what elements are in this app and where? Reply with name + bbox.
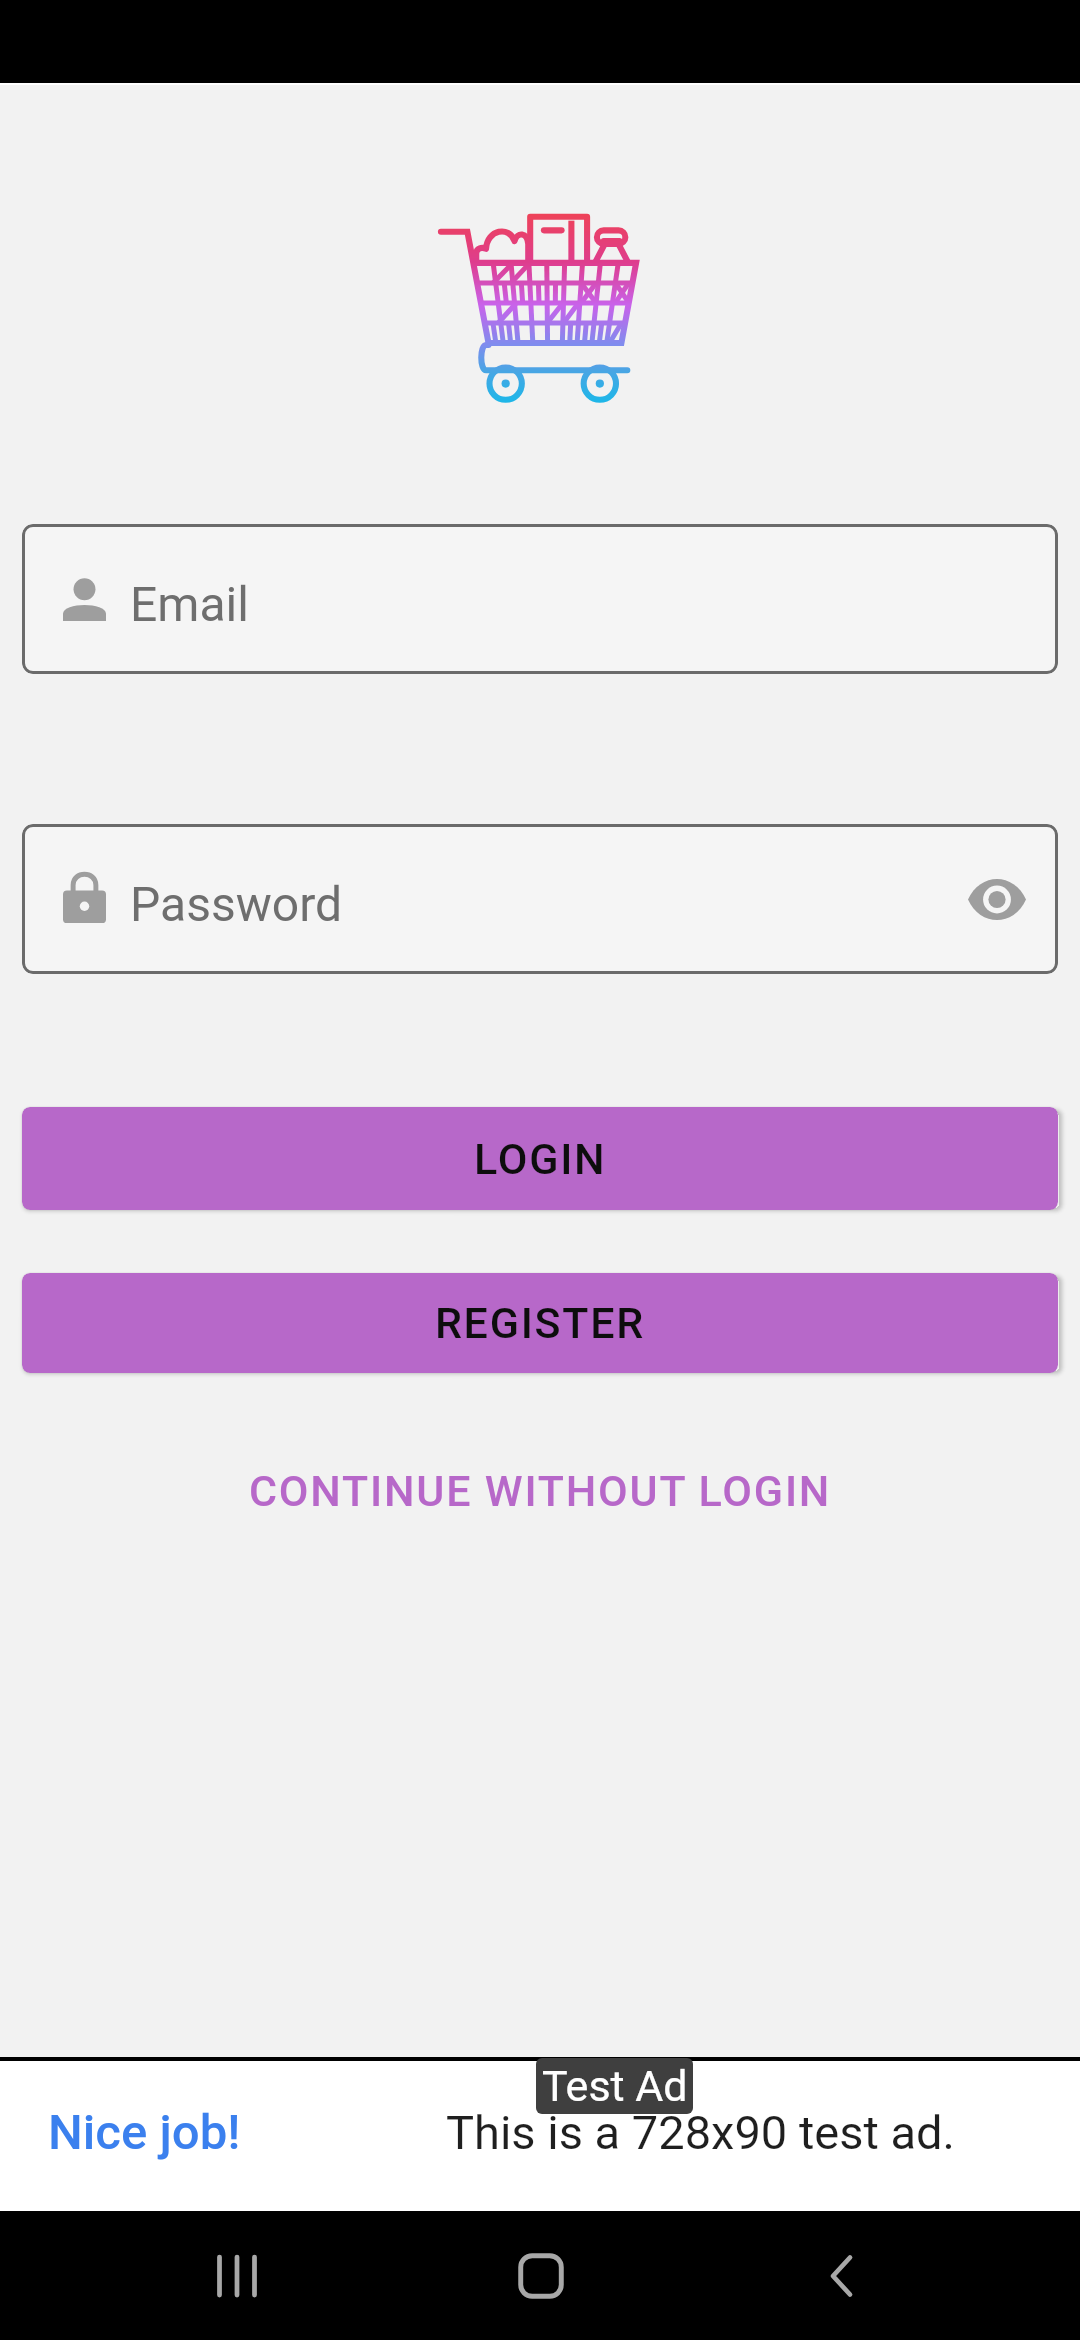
staticText: LOGIN <box>474 1134 607 1184</box>
staticText: Email <box>130 576 249 632</box>
staticText: Nice job! <box>48 2104 241 2161</box>
button[interactable]: Password <box>22 824 1058 974</box>
button[interactable]: REGISTER <box>22 1273 1058 1373</box>
staticText: REGISTER <box>435 1298 645 1348</box>
button[interactable]: Email <box>22 524 1058 674</box>
button[interactable]: Recent apps <box>161 2211 313 2340</box>
button[interactable]: Show password <box>947 849 1047 949</box>
staticText: Test Ad <box>542 2061 688 2111</box>
button[interactable]: Home <box>465 2211 617 2340</box>
button[interactable]: LOGIN <box>22 1107 1058 1210</box>
button[interactable]: Back <box>766 2211 918 2340</box>
staticText: CONTINUE WITHOUT LOGIN <box>249 1466 832 1516</box>
staticText: This is a 728x90 test ad. <box>446 2105 955 2160</box>
button[interactable]: CONTINUE WITHOUT LOGIN <box>0 1461 1080 1521</box>
staticText: Password <box>130 876 343 932</box>
